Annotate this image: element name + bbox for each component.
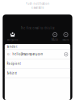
- staticText: Push notification: [25, 2, 49, 5]
- staticText: is available: [30, 6, 44, 9]
- staticText: Subject: [7, 71, 17, 75]
- staticText: More: [62, 38, 69, 41]
- staticText: Everyone: [7, 38, 19, 41]
- staticText: Recipient: [7, 62, 21, 65]
- button[interactable]: Add recipient: [64, 52, 68, 56]
- button[interactable]: More: [62, 32, 69, 41]
- staticText: Sender:: [7, 45, 18, 48]
- staticText: Mute: [51, 38, 58, 41]
- button[interactable]: Everyone: [7, 32, 19, 41]
- staticText: To:: [7, 52, 11, 56]
- staticText: The first email to this list: [20, 26, 54, 30]
- staticText: hello@mycompany.com: [12, 52, 42, 56]
- button[interactable]: Mute: [51, 32, 58, 41]
